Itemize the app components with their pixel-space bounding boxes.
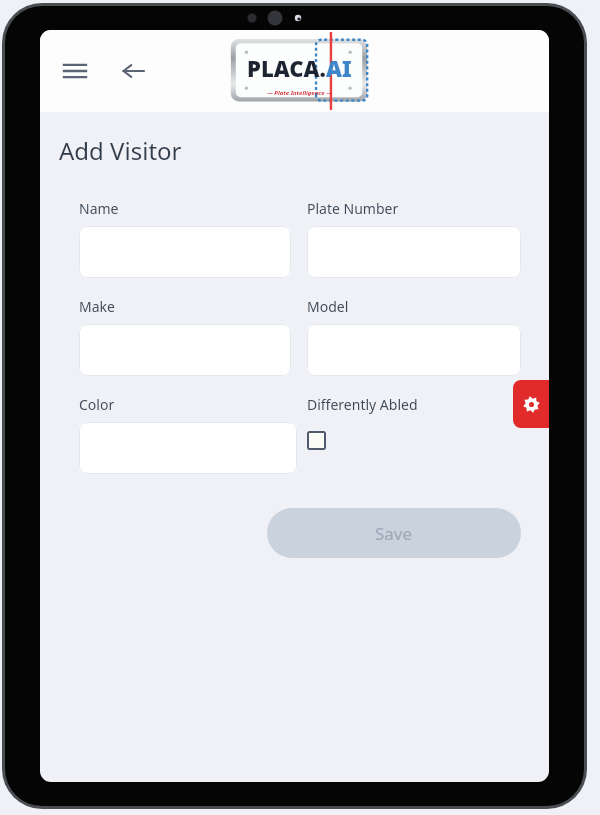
button[interactable] bbox=[79, 226, 291, 278]
button[interactable] bbox=[307, 324, 521, 376]
staticText: PLACA. bbox=[247, 53, 326, 83]
button[interactable]: Menu bbox=[58, 54, 92, 88]
button[interactable]: Save bbox=[267, 508, 521, 558]
staticText: Add Visitor bbox=[59, 134, 182, 167]
staticText: Name bbox=[79, 199, 119, 218]
staticText: Model bbox=[307, 297, 349, 316]
button[interactable] bbox=[307, 226, 521, 278]
button[interactable] bbox=[79, 422, 297, 474]
button[interactable]: Back bbox=[116, 54, 150, 88]
staticText: Differently Abled bbox=[307, 395, 418, 414]
button[interactable] bbox=[79, 324, 291, 376]
staticText: Make bbox=[79, 297, 115, 316]
staticText: Save bbox=[375, 522, 413, 545]
button[interactable]: Settings bbox=[513, 380, 549, 428]
staticText: — Plate Intelligence — bbox=[267, 89, 332, 97]
staticText: Plate Number bbox=[307, 199, 399, 218]
staticText: Color bbox=[79, 395, 115, 414]
staticText: AI bbox=[326, 53, 352, 83]
button[interactable]: Differently Abled bbox=[307, 424, 339, 456]
